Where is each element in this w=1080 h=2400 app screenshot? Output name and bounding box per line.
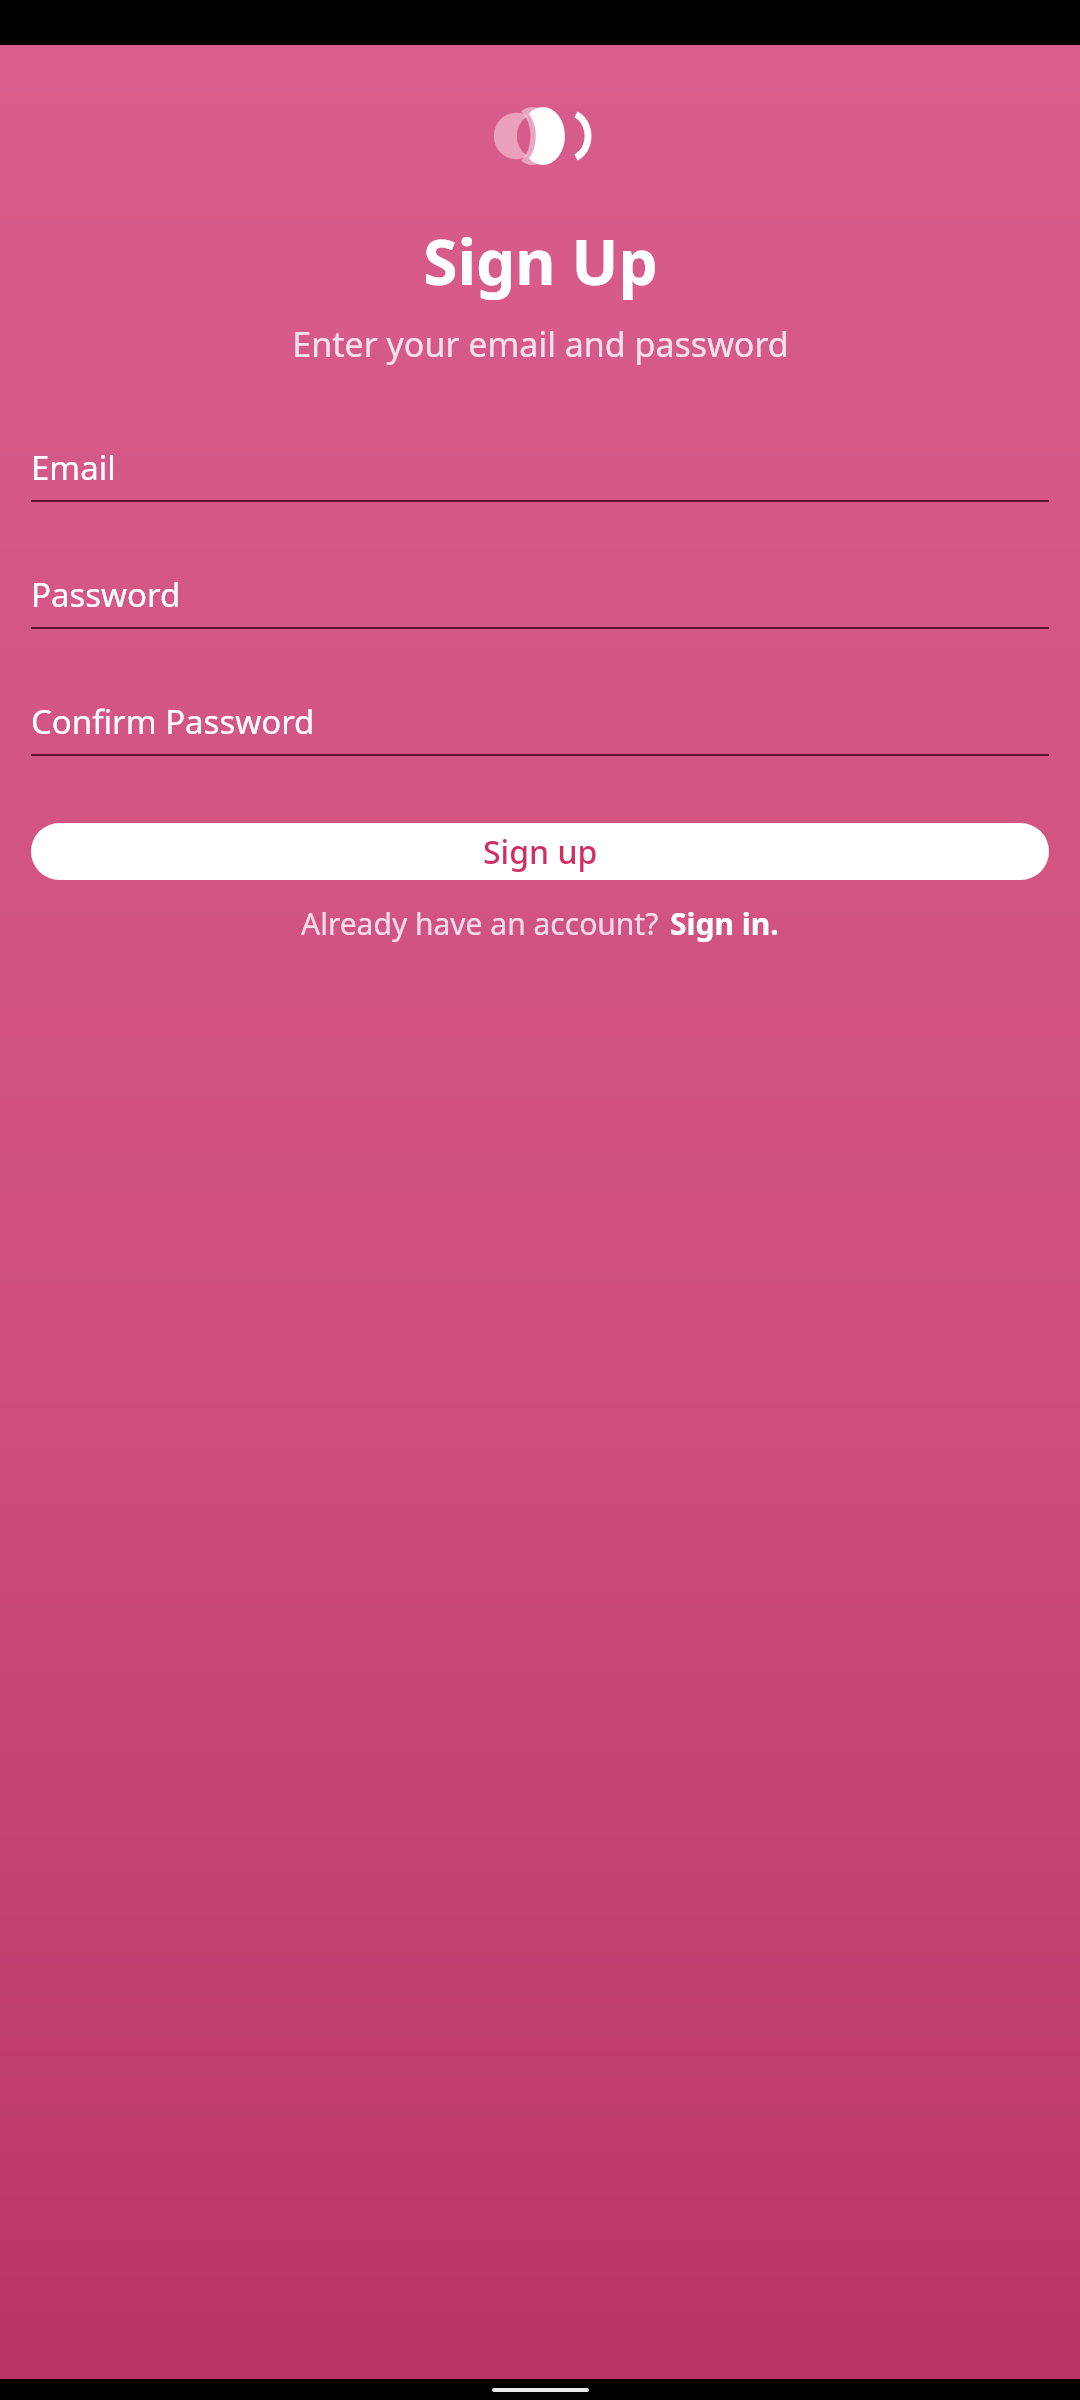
button[interactable]: Password: [31, 572, 1049, 629]
staticText: Confirm Password: [31, 699, 315, 744]
button[interactable]: Email: [31, 445, 1049, 502]
staticText: Sign in.: [670, 903, 779, 944]
button[interactable]: Confirm Password: [31, 699, 1049, 756]
staticText: Password: [31, 572, 181, 617]
other: Home gesture bar: [492, 2388, 589, 2392]
staticText: Sign up: [483, 830, 598, 874]
button[interactable]: Already have an account?: [301, 903, 779, 944]
button[interactable]: Sign up: [31, 823, 1049, 880]
staticText: Email: [31, 445, 116, 490]
staticText: Sign Up: [423, 219, 658, 303]
staticText: Already have an account?: [301, 903, 659, 944]
staticText: Enter your email and password: [292, 321, 789, 367]
